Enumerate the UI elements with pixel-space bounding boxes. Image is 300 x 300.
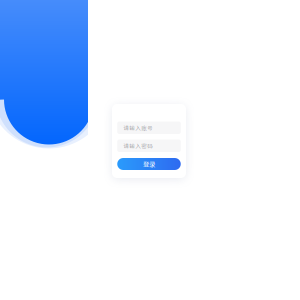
- staticText: 请输入账号: [123, 124, 153, 132]
- staticText: 登录: [143, 159, 155, 169]
- button[interactable]: 登录: [117, 158, 181, 170]
- staticText: 请输入密码: [123, 142, 153, 150]
